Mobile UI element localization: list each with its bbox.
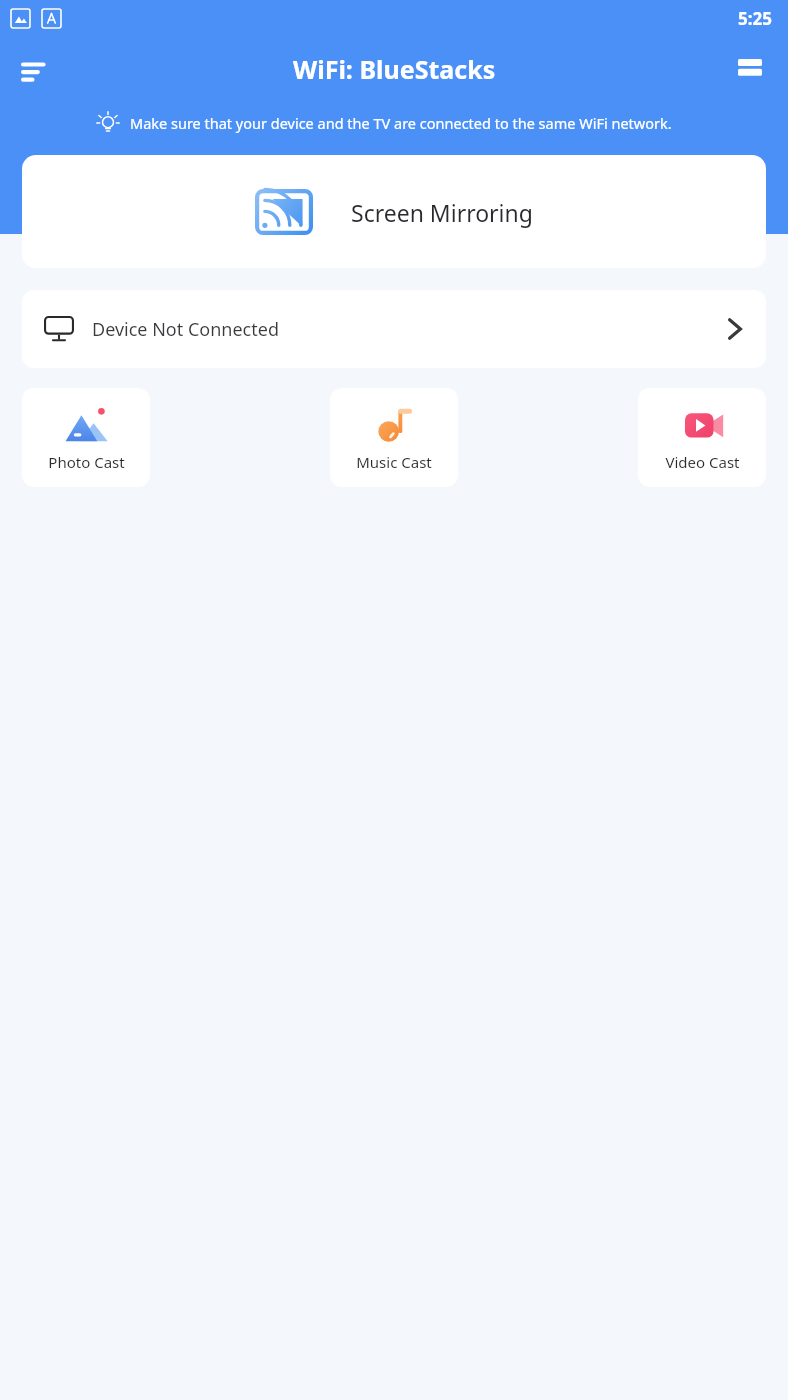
button[interactable]: Music Cast [330, 388, 458, 487]
staticText: Device Not Connected [92, 317, 279, 342]
staticText: Photo Cast [48, 452, 125, 472]
staticText: Screen Mirroring [351, 197, 533, 228]
staticText: WiFi: BlueStacks [293, 52, 496, 86]
staticText: Music Cast [356, 452, 432, 472]
staticText: Make sure that your device and the TV ar… [130, 113, 672, 133]
button[interactable]: More options [724, 43, 776, 95]
button[interactable]: Photo Cast [22, 388, 150, 487]
button[interactable]: Screen Mirroring [22, 155, 766, 268]
button[interactable]: Device Not Connected [22, 290, 766, 368]
staticText: 5:25 [738, 7, 772, 30]
staticText: Video Cast [665, 452, 740, 472]
button[interactable]: Video Cast [638, 388, 766, 487]
button[interactable]: Menu [10, 43, 62, 95]
